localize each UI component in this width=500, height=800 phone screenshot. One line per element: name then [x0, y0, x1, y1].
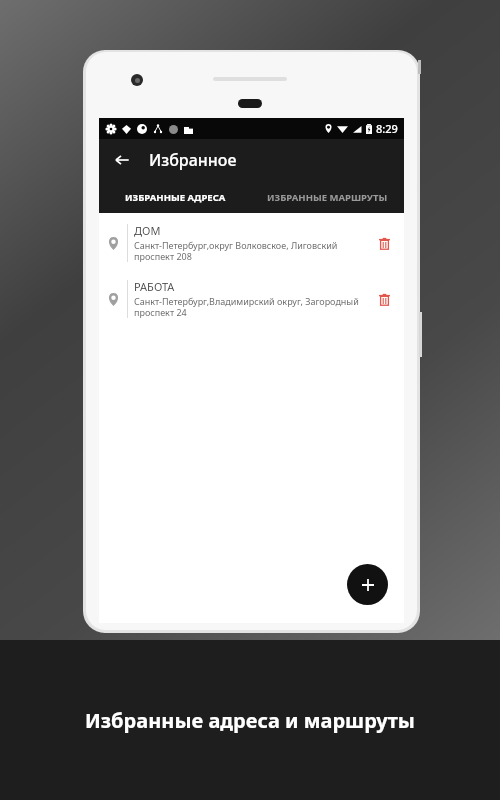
button[interactable]: Delete [372, 287, 396, 311]
staticText: Санкт-Петербург,Владимирский округ, Заго… [134, 295, 366, 319]
staticText: РАБОТА [134, 279, 175, 294]
button[interactable]: Add [347, 564, 388, 605]
button[interactable]: ИЗБРАННЫЕ МАРШРУТЫ [251, 181, 404, 213]
staticText: 8:29 [376, 121, 398, 136]
staticText: ИЗБРАННЫЕ МАРШРУТЫ [267, 191, 388, 204]
staticText: Избранное [149, 149, 237, 171]
staticText: Избранные адреса и маршруты [85, 707, 415, 734]
staticText: Санкт-Петербург,округ Волковское, Лиговс… [134, 239, 366, 263]
button[interactable]: Delete [372, 231, 396, 255]
button[interactable]: РАБОТА [99, 275, 404, 323]
button[interactable]: ИЗБРАННЫЕ АДРЕСА [99, 181, 251, 213]
staticText: ДОМ [134, 223, 161, 238]
staticText: ИЗБРАННЫЕ АДРЕСА [125, 191, 226, 204]
button[interactable]: ДОМ [99, 219, 404, 267]
button[interactable]: Back [107, 145, 137, 175]
